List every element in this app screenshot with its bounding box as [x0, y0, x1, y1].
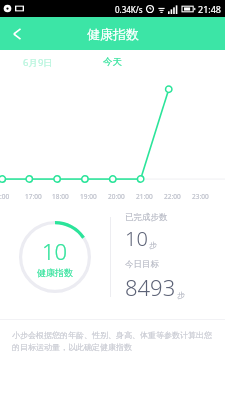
- staticText: 8493: [125, 272, 176, 302]
- staticText: 今日目标: [125, 259, 159, 270]
- staticText: 18:00: [52, 192, 69, 201]
- staticText: 已完成步数: [125, 212, 168, 223]
- staticText: 6月9日: [23, 56, 53, 69]
- staticText: 10: [42, 236, 68, 266]
- staticText: 步: [177, 290, 185, 300]
- staticText: 10: [125, 225, 148, 252]
- button[interactable]: 10: [0, 207, 110, 307]
- staticText: 小步会根据您的年龄、性别、身高、体重等参数计算出您的目标运动量，以此确定健康指数: [12, 330, 213, 352]
- staticText: 今天: [103, 56, 122, 68]
- staticText: 21:00: [136, 192, 153, 201]
- staticText: 健康指数: [37, 267, 73, 278]
- staticText: 23:00: [192, 192, 209, 201]
- staticText: 19:00: [80, 192, 97, 201]
- button[interactable]: 今天: [75, 50, 150, 74]
- staticText: 21:48: [198, 3, 222, 15]
- staticText: 0.34K/s: [115, 4, 143, 15]
- staticText: 17:00: [25, 192, 42, 201]
- staticText: 健康指数: [87, 26, 139, 42]
- button[interactable]: 6月9日: [0, 50, 75, 74]
- staticText: 20:00: [108, 192, 125, 201]
- staticText: :00: [0, 192, 10, 201]
- button[interactable]: Back: [0, 17, 34, 50]
- staticText: 步: [149, 240, 157, 250]
- staticText: 22:00: [164, 192, 181, 201]
